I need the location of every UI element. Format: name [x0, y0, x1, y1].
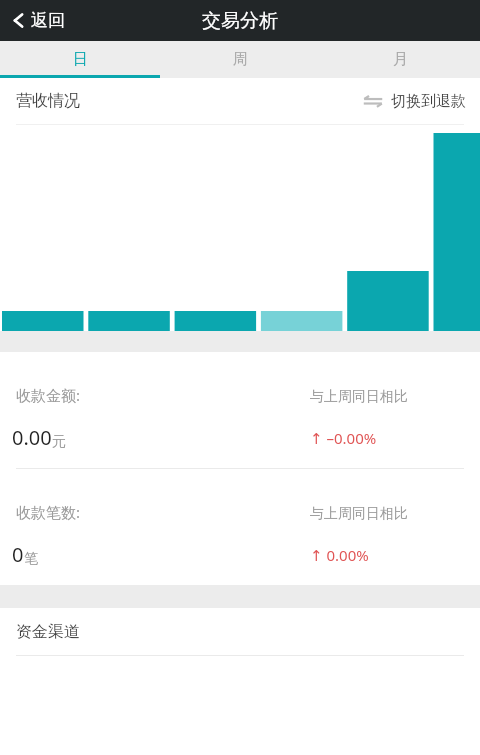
- staticText: 与上周同日相比: [310, 388, 408, 406]
- staticText: 资金渠道: [16, 622, 80, 642]
- button[interactable]: 月: [320, 41, 480, 78]
- staticText: 营收情况: [16, 91, 80, 111]
- staticText: 收款笔数:: [16, 502, 81, 522]
- staticText: 周: [233, 50, 248, 69]
- button[interactable]: 切换到退款: [352, 78, 480, 124]
- button[interactable]: 周: [160, 41, 320, 78]
- staticText: 0.00: [12, 424, 52, 451]
- button[interactable]: 日: [0, 41, 160, 78]
- staticText: 0: [12, 541, 24, 568]
- staticText: 元: [52, 433, 66, 451]
- button[interactable]: 返回: [0, 0, 79, 41]
- staticText: 收款金额:: [16, 385, 81, 405]
- staticText: 返回: [31, 10, 65, 31]
- staticText: 笔: [24, 550, 38, 568]
- staticText: 月: [393, 50, 408, 69]
- staticText: 交易分析: [202, 9, 278, 33]
- staticText: ↑ –0.00%: [310, 428, 377, 448]
- staticText: ↑ 0.00%: [310, 545, 369, 565]
- staticText: 与上周同日相比: [310, 505, 408, 523]
- staticText: 日: [73, 50, 88, 69]
- staticText: 切换到退款: [391, 92, 466, 111]
